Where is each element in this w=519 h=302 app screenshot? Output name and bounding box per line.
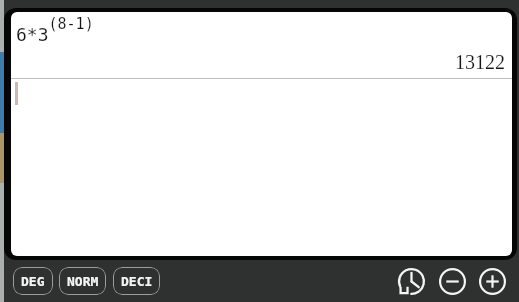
button[interactable]: NORM [59, 267, 106, 295]
staticText: DECI [121, 274, 153, 289]
button[interactable]: DEG [13, 267, 53, 295]
staticText: 6*3(8-1) [16, 15, 94, 45]
button[interactable]: DECI [113, 267, 160, 295]
staticText: DEG [21, 274, 45, 289]
staticText: NORM [67, 274, 99, 289]
button[interactable]: History [398, 268, 425, 295]
button[interactable]: Zoom in [479, 268, 506, 295]
button[interactable]: Zoom out [439, 268, 466, 295]
staticText: 13122 [11, 51, 505, 73]
